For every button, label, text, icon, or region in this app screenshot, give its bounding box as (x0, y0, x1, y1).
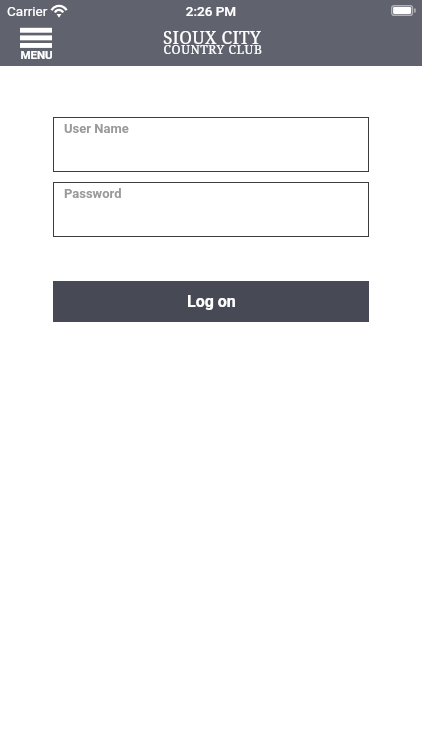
button[interactable]: User Name (53, 117, 369, 172)
button[interactable]: Menu (20, 26, 52, 59)
staticText: 2:26 PM (0, 3, 422, 19)
staticText: Password (64, 186, 122, 201)
staticText: SIOUX CITY (1, 26, 422, 49)
button[interactable]: Log on (53, 281, 369, 322)
staticText: Log on (187, 292, 236, 311)
button[interactable]: Password (53, 182, 369, 237)
staticText: User Name (64, 121, 129, 136)
staticText: Carrier (7, 3, 48, 19)
staticText: MENU (20, 48, 52, 61)
staticText: COUNTRY CLUB (2, 41, 422, 58)
